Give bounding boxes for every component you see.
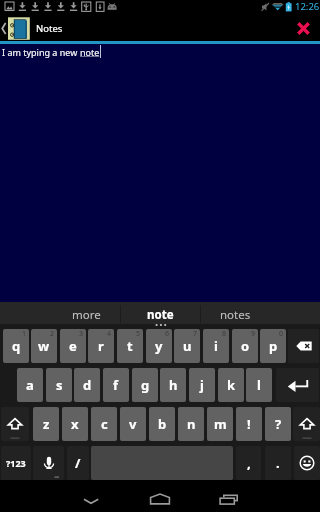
button[interactable]: b bbox=[149, 407, 175, 441]
staticText: t bbox=[127, 337, 133, 355]
button[interactable]: r bbox=[88, 329, 114, 363]
staticText: b bbox=[158, 415, 167, 433]
staticText: 12:26 bbox=[295, 0, 320, 13]
button[interactable]: a bbox=[17, 368, 43, 402]
button[interactable]: ? bbox=[265, 407, 291, 441]
staticText: o bbox=[241, 337, 250, 355]
button[interactable]: g bbox=[132, 368, 158, 402]
button[interactable]: p bbox=[260, 329, 286, 363]
staticText: 2 bbox=[50, 329, 55, 339]
staticText: 5 bbox=[136, 329, 141, 339]
staticText: 4 bbox=[107, 329, 112, 339]
button[interactable]: c bbox=[91, 407, 117, 441]
button[interactable]: y bbox=[146, 329, 172, 363]
button[interactable]: Navigate up bbox=[0, 16, 63, 41]
staticText: ! bbox=[247, 415, 251, 433]
button[interactable]: i bbox=[203, 329, 229, 363]
staticText: 1 bbox=[22, 329, 27, 339]
button[interactable]: z bbox=[33, 407, 59, 441]
staticText: j bbox=[200, 376, 204, 394]
staticText: q bbox=[12, 337, 21, 355]
staticText: I am typing a new bbox=[2, 46, 80, 58]
staticText: 3 bbox=[79, 329, 84, 339]
button[interactable]: note bbox=[124, 302, 196, 324]
staticText: Notes bbox=[36, 22, 63, 35]
button[interactable]: d bbox=[74, 368, 100, 402]
button[interactable]: u bbox=[174, 329, 200, 363]
button[interactable]: more bbox=[50, 302, 122, 324]
staticText: n bbox=[187, 415, 196, 433]
staticText: z bbox=[43, 415, 50, 433]
button[interactable]: h bbox=[160, 368, 186, 402]
staticText: 9 bbox=[251, 329, 256, 339]
staticText: 6 bbox=[165, 329, 170, 339]
button[interactable]: Hide keyboard bbox=[71, 486, 111, 506]
staticText: 8 bbox=[222, 329, 227, 339]
button[interactable]: w bbox=[31, 329, 57, 363]
button[interactable]: q bbox=[3, 329, 29, 363]
button[interactable]: Shift bbox=[1, 407, 29, 441]
button[interactable]: notes bbox=[199, 302, 271, 324]
button[interactable]: t bbox=[117, 329, 143, 363]
button[interactable]: v bbox=[120, 407, 146, 441]
staticText: m bbox=[214, 415, 227, 433]
button[interactable]: n bbox=[178, 407, 204, 441]
button[interactable]: ! bbox=[236, 407, 262, 441]
staticText: ?123 bbox=[6, 457, 26, 469]
staticText: more bbox=[72, 307, 101, 323]
staticText: d bbox=[83, 376, 92, 394]
staticText: r bbox=[98, 337, 104, 355]
staticText: e bbox=[69, 337, 77, 355]
staticText: ? bbox=[275, 415, 282, 433]
button[interactable]: f bbox=[103, 368, 129, 402]
button[interactable]: Recent apps bbox=[209, 486, 249, 506]
staticText: x bbox=[71, 415, 79, 433]
button[interactable]: ?123 bbox=[1, 446, 31, 480]
button[interactable]: l bbox=[246, 368, 272, 402]
staticText: note bbox=[147, 307, 174, 323]
staticText: / bbox=[75, 454, 81, 472]
staticText: notes bbox=[220, 307, 251, 323]
staticText: s bbox=[56, 376, 63, 394]
staticText: p bbox=[269, 337, 278, 355]
staticText: y bbox=[155, 337, 163, 355]
staticText: 0 bbox=[279, 329, 284, 339]
staticText: u bbox=[183, 337, 192, 355]
button[interactable]: Enter bbox=[276, 368, 319, 402]
button[interactable]: Voice input bbox=[33, 446, 64, 480]
button[interactable]: e bbox=[60, 329, 86, 363]
staticText: note bbox=[80, 46, 100, 58]
button[interactable]: k bbox=[218, 368, 244, 402]
staticText: 7 bbox=[193, 329, 198, 339]
staticText: l bbox=[257, 376, 261, 394]
button[interactable]: Home bbox=[140, 486, 180, 506]
staticText: a bbox=[26, 376, 34, 394]
staticText: . bbox=[276, 454, 280, 472]
button[interactable]: j bbox=[189, 368, 215, 402]
staticText: i bbox=[214, 337, 218, 355]
button[interactable]: Shift bbox=[293, 407, 320, 441]
staticText: c bbox=[101, 415, 108, 433]
button[interactable]: Backspace bbox=[288, 329, 319, 363]
button[interactable]: Discard note bbox=[286, 16, 320, 41]
staticText: k bbox=[227, 376, 236, 394]
staticText: , bbox=[247, 454, 251, 472]
button[interactable]: s bbox=[46, 368, 72, 402]
button[interactable]: x bbox=[62, 407, 88, 441]
staticText: h bbox=[169, 376, 178, 394]
staticText: g bbox=[141, 376, 150, 394]
button[interactable]: . bbox=[265, 446, 291, 480]
button[interactable]: , bbox=[236, 446, 261, 480]
staticText: f bbox=[113, 376, 119, 394]
button[interactable]: m bbox=[207, 407, 233, 441]
staticText: v bbox=[129, 415, 137, 433]
button[interactable]: o bbox=[232, 329, 258, 363]
button[interactable]: / bbox=[67, 446, 89, 480]
button[interactable]: Emoji bbox=[294, 446, 320, 480]
staticText: w bbox=[38, 337, 50, 355]
